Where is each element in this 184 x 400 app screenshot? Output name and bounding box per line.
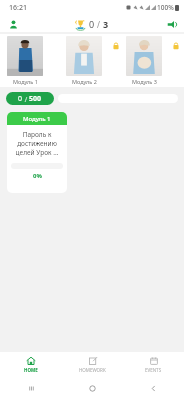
- staticText: 0%: [33, 172, 42, 180]
- staticText: Пароль к достижению целей Урок ...: [11, 130, 63, 157]
- button[interactable]: Notifications: [164, 17, 178, 31]
- button[interactable]: EVENTS: [123, 352, 184, 376]
- staticText: 16:21: [9, 3, 27, 13]
- staticText: Модуль 1: [23, 115, 51, 123]
- button[interactable]: HOME: [0, 352, 62, 376]
- button[interactable]: Модуль 2: [66, 36, 102, 85]
- staticText: HOMEWORK: [79, 367, 106, 373]
- button[interactable]: HOMEWORK: [62, 352, 123, 376]
- button[interactable]: Модуль 3: [126, 36, 162, 85]
- staticText: Модуль 2: [72, 78, 97, 85]
- button[interactable]: 0: [75, 18, 109, 30]
- button[interactable]: Profile: [6, 17, 20, 31]
- button[interactable]: Модуль 1: [7, 36, 43, 85]
- staticText: /: [23, 95, 29, 104]
- staticText: 0: [18, 94, 23, 104]
- staticText: 100%: [157, 3, 174, 12]
- staticText: EVENTS: [145, 367, 162, 373]
- button[interactable]: 0: [6, 92, 54, 105]
- staticText: Модуль 1: [13, 78, 38, 85]
- staticText: HOME: [24, 367, 38, 373]
- staticText: /: [95, 19, 103, 30]
- button[interactable]: Модуль 1: [7, 112, 67, 193]
- staticText: 3: [103, 18, 109, 30]
- staticText: 500: [29, 94, 42, 104]
- staticText: Модуль 3: [132, 78, 157, 85]
- staticText: 0: [89, 18, 95, 30]
